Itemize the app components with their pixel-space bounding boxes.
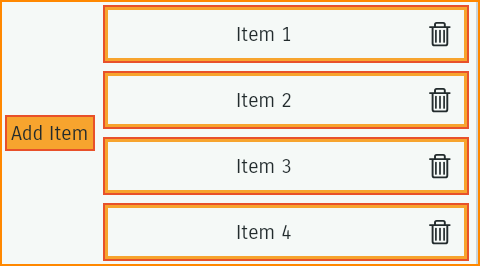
button[interactable]: Delete Item 3 bbox=[416, 142, 464, 190]
button[interactable]: Add Item bbox=[5, 115, 95, 151]
button[interactable]: Item 1 bbox=[108, 10, 464, 58]
staticText: Add Item bbox=[11, 122, 89, 146]
button[interactable]: Delete Item 2 bbox=[416, 76, 464, 124]
staticText: Item 1 bbox=[236, 23, 292, 47]
button[interactable]: Delete Item 4 bbox=[416, 208, 464, 256]
button[interactable]: Delete Item 1 bbox=[416, 10, 464, 58]
button[interactable]: Item 3 bbox=[108, 142, 464, 190]
staticText: Item 3 bbox=[236, 155, 292, 179]
staticText: Item 4 bbox=[236, 221, 292, 245]
button[interactable]: Item 4 bbox=[108, 208, 464, 256]
button[interactable]: Item 2 bbox=[108, 76, 464, 124]
staticText: Item 2 bbox=[236, 89, 292, 113]
